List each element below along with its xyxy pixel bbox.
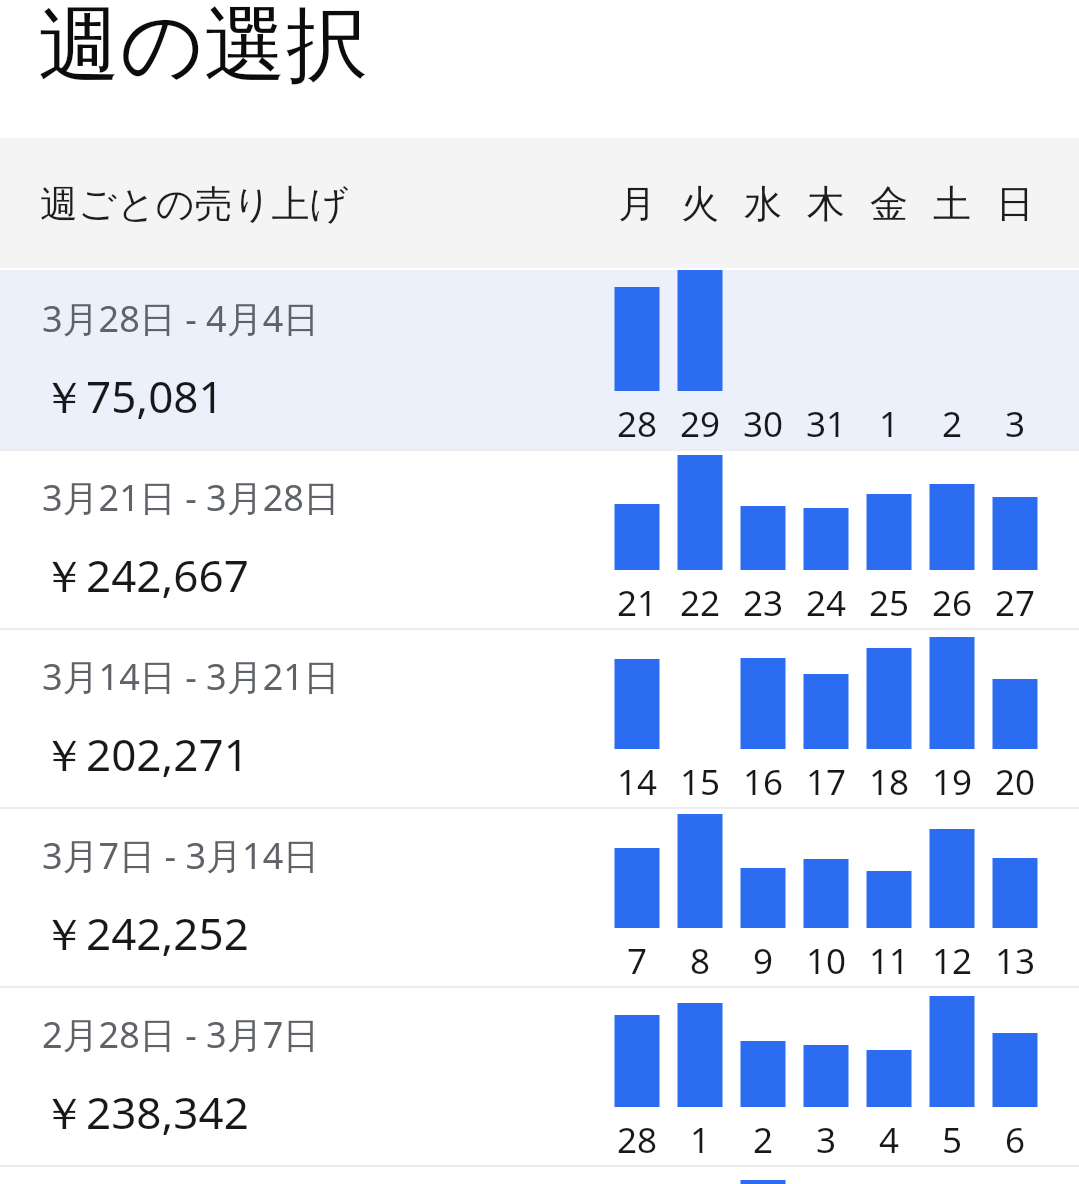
staticText: 水 — [739, 180, 787, 228]
staticText: 2 — [732, 1116, 794, 1164]
staticText: 31 — [795, 400, 857, 448]
staticText: ￥242,667 — [42, 545, 249, 605]
staticText: 2月28日 - 3月7日 — [42, 1010, 320, 1059]
staticText: ￥238,342 — [42, 1082, 249, 1142]
button[interactable]: 3月7日 - 3月14日 — [0, 807, 1079, 986]
staticText: 3月28日 - 4月4日 — [42, 294, 320, 343]
staticText: 3月14日 - 3月21日 — [42, 652, 340, 701]
staticText: 15 — [669, 758, 731, 806]
staticText: 7 — [606, 937, 668, 985]
staticText: 1 — [669, 1116, 731, 1164]
staticText: 20 — [984, 758, 1046, 806]
staticText: 3 — [795, 1116, 857, 1164]
staticText: 6 — [984, 1116, 1046, 1164]
button[interactable]: 3月21日 - 3月28日 — [0, 449, 1079, 628]
staticText: 10 — [795, 937, 857, 985]
staticText: 24 — [795, 579, 857, 627]
staticText: 27 — [984, 579, 1046, 627]
staticText: 23 — [732, 579, 794, 627]
staticText: 18 — [858, 758, 920, 806]
staticText: 30 — [732, 400, 794, 448]
staticText: 25 — [858, 579, 920, 627]
staticText: 16 — [732, 758, 794, 806]
staticText: ￥75,081 — [42, 366, 224, 426]
staticText: 13 — [984, 937, 1046, 985]
staticText: 28 — [606, 400, 668, 448]
staticText: 月 — [613, 180, 661, 228]
staticText: 1 — [858, 400, 920, 448]
staticText: 11 — [858, 937, 920, 985]
staticText: 29 — [669, 400, 731, 448]
staticText: 26 — [921, 579, 983, 627]
staticText: 火 — [676, 180, 724, 228]
staticText: 19 — [921, 758, 983, 806]
button[interactable]: 2月28日 - 3月7日 — [0, 986, 1079, 1165]
button[interactable] — [0, 1165, 1079, 1184]
button[interactable]: 3月28日 - 4月4日 — [0, 270, 1079, 449]
staticText: 3月7日 - 3月14日 — [42, 831, 320, 880]
staticText: 木 — [802, 180, 850, 228]
staticText: 週ごとの売り上げ — [40, 180, 349, 228]
staticText: 4 — [858, 1116, 920, 1164]
staticText: ￥242,252 — [42, 903, 249, 963]
staticText: 9 — [732, 937, 794, 985]
staticText: 12 — [921, 937, 983, 985]
staticText: 17 — [795, 758, 857, 806]
staticText: 28 — [606, 1116, 668, 1164]
staticText: 14 — [606, 758, 668, 806]
staticText: 5 — [921, 1116, 983, 1164]
staticText: 3 — [984, 400, 1046, 448]
staticText: 金 — [865, 180, 913, 228]
staticText: 2 — [921, 400, 983, 448]
staticText: 21 — [606, 579, 668, 627]
staticText: 22 — [669, 579, 731, 627]
staticText: 週の選択 — [38, 0, 368, 97]
staticText: 8 — [669, 937, 731, 985]
staticText: 土 — [928, 180, 976, 228]
staticText: 3月21日 - 3月28日 — [42, 473, 340, 522]
staticText: 日 — [991, 180, 1039, 228]
button[interactable]: 3月14日 - 3月21日 — [0, 628, 1079, 807]
staticText: ￥202,271 — [42, 724, 249, 784]
